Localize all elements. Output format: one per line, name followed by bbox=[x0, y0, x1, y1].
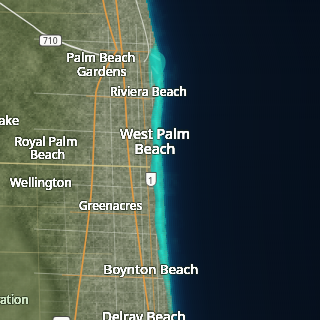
button[interactable]: Map of Palm Beach County, Florida bbox=[0, 0, 320, 320]
